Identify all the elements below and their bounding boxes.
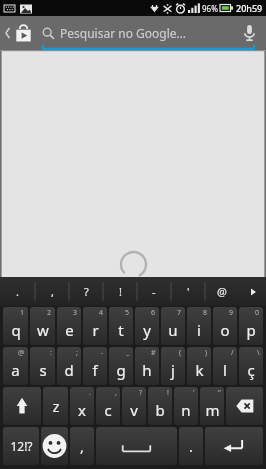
staticText: 20h59 bbox=[236, 2, 263, 14]
staticText: e bbox=[65, 320, 74, 340]
staticText: @ bbox=[18, 348, 25, 358]
staticText: - bbox=[152, 284, 156, 299]
staticText: ' bbox=[187, 284, 190, 299]
staticText: j bbox=[171, 360, 175, 380]
button[interactable]: More suggestions bbox=[239, 277, 266, 306]
staticText: v bbox=[130, 400, 138, 420]
staticText: b bbox=[155, 400, 165, 420]
staticText: p bbox=[246, 320, 256, 340]
staticText: ' bbox=[193, 388, 195, 398]
button[interactable]: @ bbox=[3, 347, 28, 385]
staticText: ! bbox=[119, 284, 122, 299]
staticText: ! bbox=[167, 388, 169, 398]
staticText: _ bbox=[126, 348, 130, 358]
staticText: 4 bbox=[99, 308, 104, 318]
button[interactable]: Backspace bbox=[226, 387, 263, 425]
button[interactable]: Enter bbox=[205, 427, 263, 465]
staticText: @ bbox=[217, 284, 227, 299]
staticText: 12!? bbox=[10, 438, 33, 454]
staticText: / bbox=[231, 348, 234, 358]
staticText: 9 bbox=[229, 308, 234, 318]
button[interactable]: @ bbox=[205, 277, 239, 306]
button[interactable]: . bbox=[0, 277, 35, 306]
button[interactable]: 2 bbox=[30, 307, 55, 345]
button[interactable]: ' bbox=[174, 387, 198, 425]
button[interactable]: 1 bbox=[3, 307, 28, 345]
staticText: l bbox=[223, 360, 227, 380]
button[interactable]: 3 bbox=[57, 307, 81, 345]
staticText: n bbox=[181, 400, 191, 420]
staticText: : bbox=[50, 348, 52, 358]
staticText: x bbox=[78, 400, 86, 420]
button[interactable]: / bbox=[213, 347, 237, 385]
staticText: Pesquisar no Google… bbox=[60, 25, 187, 41]
staticText: 3 bbox=[73, 308, 78, 318]
button[interactable]: . bbox=[70, 387, 94, 425]
staticText: , bbox=[80, 437, 84, 456]
button[interactable]: Space bbox=[96, 427, 177, 465]
staticText: 6 bbox=[151, 308, 156, 318]
button[interactable]: ' bbox=[171, 277, 205, 306]
button[interactable]: 4 bbox=[83, 307, 107, 345]
staticText: z bbox=[52, 396, 60, 416]
staticText: ( bbox=[179, 348, 182, 358]
staticText: 8 bbox=[203, 308, 208, 318]
button[interactable]: \ bbox=[239, 347, 263, 385]
button[interactable]: ( bbox=[161, 347, 185, 385]
staticText: . bbox=[16, 284, 19, 299]
button[interactable]: - bbox=[83, 347, 107, 385]
staticText: \ bbox=[257, 348, 260, 358]
button[interactable]: # bbox=[135, 347, 159, 385]
button[interactable]: Navigate up, Play Store bbox=[0, 16, 42, 50]
button[interactable]: _ bbox=[109, 347, 133, 385]
staticText: g bbox=[116, 360, 126, 380]
button[interactable]: , bbox=[96, 387, 120, 425]
staticText: 5 bbox=[125, 308, 130, 318]
staticText: d bbox=[64, 360, 74, 380]
staticText: ç bbox=[247, 360, 255, 380]
staticText: f bbox=[92, 360, 98, 380]
staticText: o bbox=[220, 320, 230, 340]
button[interactable]: Shift bbox=[3, 387, 41, 425]
staticText: ? bbox=[139, 388, 143, 398]
button[interactable]: z bbox=[43, 387, 68, 425]
button[interactable]: 5 bbox=[109, 307, 133, 345]
staticText: # bbox=[151, 348, 156, 358]
staticText: ) bbox=[205, 348, 208, 358]
button[interactable]: - bbox=[137, 277, 171, 306]
button[interactable]: ! bbox=[148, 387, 172, 425]
button[interactable]: ! bbox=[103, 277, 137, 306]
button[interactable]: Pesquisar no Google… bbox=[42, 16, 232, 50]
staticText: w bbox=[37, 320, 49, 340]
button[interactable]: ? bbox=[122, 387, 146, 425]
staticText: t bbox=[118, 320, 124, 340]
button[interactable]: 7 bbox=[161, 307, 185, 345]
button[interactable]: 6 bbox=[135, 307, 159, 345]
button[interactable]: 9 bbox=[213, 307, 237, 345]
button[interactable]: 0 bbox=[239, 307, 263, 345]
staticText: . bbox=[89, 388, 91, 398]
button[interactable]: ? bbox=[69, 277, 103, 306]
staticText: i bbox=[197, 320, 201, 340]
staticText: m bbox=[205, 400, 220, 420]
staticText: 7 bbox=[177, 308, 182, 318]
button[interactable]: " bbox=[200, 387, 224, 425]
staticText: 2 bbox=[47, 308, 52, 318]
button[interactable]: , bbox=[70, 427, 94, 465]
button[interactable]: : bbox=[30, 347, 55, 385]
button[interactable]: ) bbox=[187, 347, 211, 385]
button[interactable]: Voice search bbox=[232, 16, 266, 50]
button[interactable]: , bbox=[35, 277, 69, 306]
staticText: - bbox=[101, 348, 104, 358]
button[interactable]: 8 bbox=[187, 307, 211, 345]
staticText: s bbox=[39, 360, 47, 380]
button[interactable]: ; bbox=[57, 347, 81, 385]
staticText: c bbox=[104, 400, 112, 420]
button[interactable]: Emoji bbox=[41, 427, 68, 465]
staticText: a bbox=[11, 360, 20, 380]
staticText: , bbox=[51, 284, 54, 299]
staticText: u bbox=[168, 320, 178, 340]
staticText: , bbox=[115, 388, 117, 398]
button[interactable]: 12!? bbox=[3, 427, 39, 465]
button[interactable]: . bbox=[179, 427, 203, 465]
